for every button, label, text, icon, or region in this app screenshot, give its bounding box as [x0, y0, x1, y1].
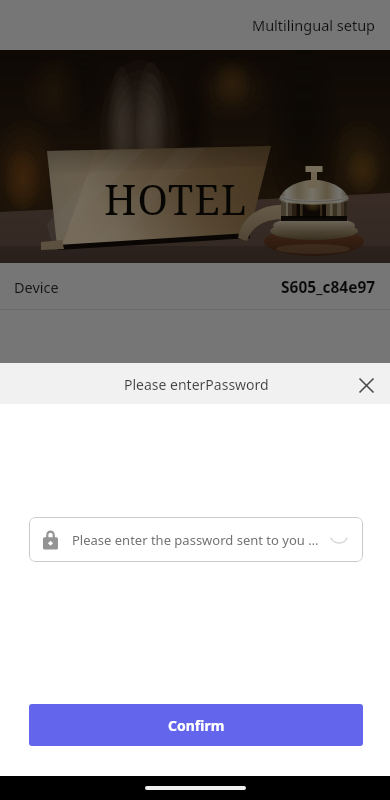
- button[interactable]: Please enter the password sent to you …: [29, 517, 363, 562]
- staticText: Multilingual setup: [252, 15, 376, 35]
- button[interactable]: Show password: [324, 525, 354, 555]
- staticText: Confirm: [168, 716, 225, 735]
- button[interactable]: Confirm: [29, 704, 363, 746]
- staticText: Please enterPassword: [124, 375, 269, 394]
- staticText: Please enter the password sent to you …: [72, 531, 319, 549]
- staticText: S605_c84e97: [281, 276, 376, 297]
- button[interactable]: Close: [350, 369, 382, 401]
- staticText: HOTEL: [104, 171, 248, 227]
- staticText: Device: [14, 277, 59, 297]
